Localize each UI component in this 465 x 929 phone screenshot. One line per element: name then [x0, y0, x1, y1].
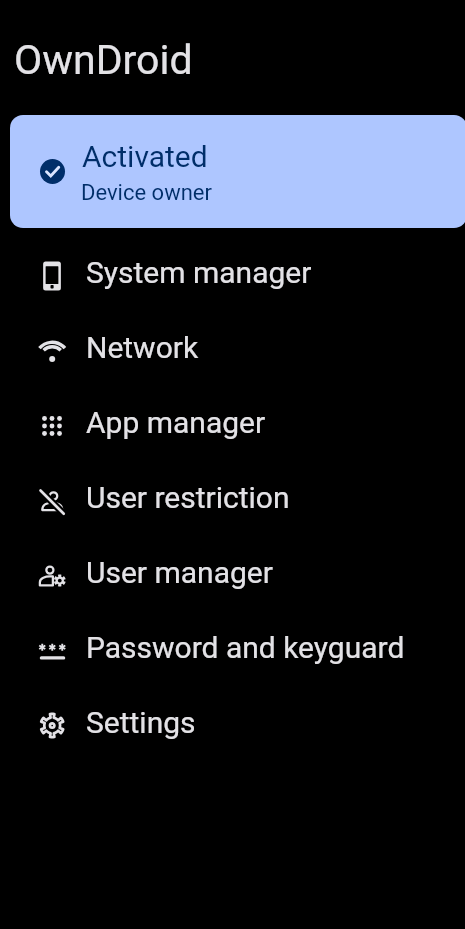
staticText: Settings [86, 705, 196, 740]
staticText: App manager [86, 405, 266, 440]
staticText: OwnDroid [14, 36, 193, 84]
staticText: User restriction [86, 480, 290, 515]
button[interactable]: Password and keyguard [0, 610, 465, 685]
staticText: Password and keyguard [86, 630, 405, 665]
staticText: System manager [86, 255, 312, 290]
button[interactable]: User manager [0, 535, 465, 610]
button[interactable]: Activated [10, 115, 465, 228]
staticText: Device owner [81, 180, 212, 206]
button[interactable]: System manager [0, 235, 465, 310]
staticText: User manager [86, 555, 273, 590]
button[interactable]: User restriction [0, 460, 465, 535]
button[interactable]: App manager [0, 385, 465, 460]
staticText: Network [86, 330, 199, 365]
button[interactable]: Network [0, 310, 465, 385]
staticText: Activated [82, 139, 208, 174]
button[interactable]: Settings [0, 685, 465, 760]
